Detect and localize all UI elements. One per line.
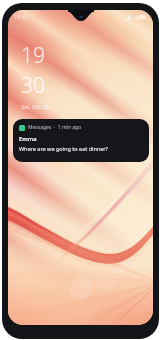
staticText: Where are we going to eat dinner?	[19, 145, 108, 152]
staticText: 19:30	[14, 14, 27, 21]
button[interactable]: Messages · 1 min ago	[13, 119, 149, 162]
staticText: 30	[21, 71, 45, 100]
staticText: Emma	[19, 135, 37, 143]
staticText: Messages · 1 min ago	[28, 124, 82, 131]
staticText: 19	[21, 41, 45, 70]
button[interactable]: Fingerprint unlock	[70, 278, 92, 300]
staticText: Sat, Oct 26	[21, 103, 49, 110]
